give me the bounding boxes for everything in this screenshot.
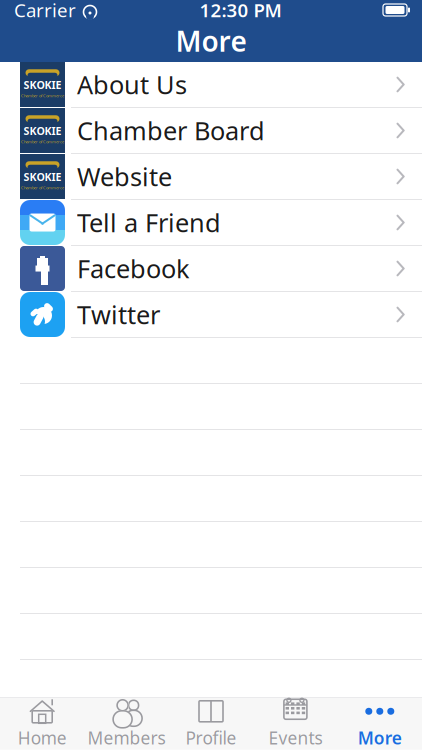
staticText: Chamber of Commerce	[21, 139, 64, 144]
staticText: About Us	[77, 68, 187, 101]
staticText: Chamber of Commerce	[21, 185, 64, 190]
staticText: More	[358, 726, 402, 749]
staticText: SKOKIE	[23, 124, 61, 138]
button[interactable]: SKOKIE	[0, 154, 422, 200]
staticText: 12:30 PM	[199, 0, 281, 22]
staticText: Carrier	[14, 0, 76, 22]
staticText: Chamber of Commerce	[21, 93, 64, 98]
staticText: Facebook	[77, 252, 190, 285]
staticText: Chamber Board	[77, 114, 265, 147]
button[interactable]: Events	[253, 698, 338, 750]
button[interactable]: Members	[84, 698, 169, 750]
staticText: More	[175, 22, 246, 60]
button[interactable]: Facebook	[0, 246, 422, 292]
staticText: Website	[77, 160, 172, 193]
staticText: SKOKIE	[23, 170, 61, 184]
staticText: Tell a Friend	[77, 206, 221, 239]
button[interactable]: Profile	[169, 698, 253, 750]
button[interactable]: Home	[0, 698, 84, 750]
button[interactable]: Twitter	[0, 292, 422, 338]
button[interactable]: More	[338, 698, 422, 750]
button[interactable]: SKOKIE	[0, 62, 422, 108]
staticText: Twitter	[77, 298, 160, 331]
button[interactable]: SKOKIE	[0, 108, 422, 154]
staticText: Profile	[185, 726, 236, 749]
staticText: Members	[88, 726, 166, 749]
staticText: Events	[268, 726, 322, 749]
staticText: Home	[18, 726, 67, 749]
button[interactable]: Tell a Friend	[0, 200, 422, 246]
staticText: SKOKIE	[23, 78, 61, 92]
